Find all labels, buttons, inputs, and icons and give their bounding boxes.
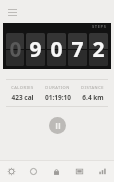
staticText: DISTANCE <box>81 85 104 90</box>
button[interactable]: Menu <box>4 4 20 20</box>
button[interactable]: Pause <box>49 117 66 134</box>
staticText: 9 <box>29 35 42 64</box>
staticText: 0 <box>9 35 22 64</box>
staticText: 423 cal <box>11 93 34 102</box>
button[interactable]: Settings <box>0 160 22 182</box>
button[interactable]: Cards <box>68 160 91 182</box>
staticText: 0 <box>50 35 63 64</box>
button[interactable]: Lock <box>45 160 68 182</box>
staticText: 7 <box>71 35 84 64</box>
staticText: 01:19:10 <box>45 93 71 102</box>
staticText: 6.4 km <box>82 93 104 102</box>
staticText: DURATION <box>45 85 70 90</box>
staticText: CALORIES <box>11 85 34 90</box>
staticText: STEPS <box>92 24 107 29</box>
button[interactable]: Activity <box>22 160 45 182</box>
staticText: 2 <box>92 35 105 64</box>
button[interactable]: Statistics <box>91 160 114 182</box>
